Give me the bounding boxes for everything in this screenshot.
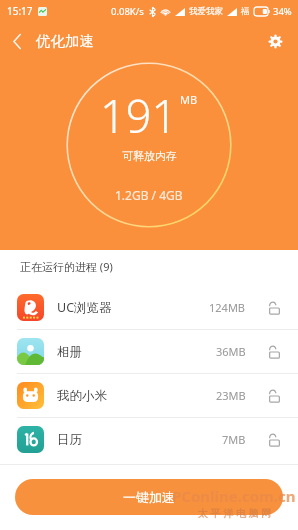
staticText: 太 平 洋 电 脑 网	[198, 506, 271, 520]
staticText: 可释放内存	[122, 149, 177, 163]
staticText: 0.08K/s	[111, 5, 144, 18]
staticText: PConline.com.cn	[172, 486, 296, 506]
staticText: MB	[180, 92, 198, 107]
staticText: 相册	[57, 344, 216, 360]
button[interactable]: UC浏览器	[0, 286, 298, 329]
button[interactable]: Settings	[258, 24, 292, 58]
staticText: 124MB	[209, 300, 246, 315]
button[interactable]: Lock process	[264, 342, 284, 362]
staticText: 7MB	[222, 432, 246, 447]
staticText: 一键加速	[123, 489, 175, 505]
staticText: 191	[100, 85, 178, 146]
staticText: 正在运行的进程 (9)	[20, 259, 113, 274]
staticText: 我爱我家	[189, 6, 223, 17]
button[interactable]: 一键加速	[15, 479, 283, 515]
button[interactable]: 我的小米	[0, 374, 298, 417]
button[interactable]: 日历	[0, 418, 298, 461]
staticText: 福	[241, 6, 250, 17]
staticText: 34%	[273, 5, 292, 18]
staticText: 23MB	[216, 388, 246, 403]
staticText: 优化加速	[36, 32, 94, 50]
staticText: 日历	[57, 432, 222, 448]
staticText: 36MB	[216, 344, 246, 359]
staticText: 15:17	[7, 4, 33, 18]
staticText: 我的小米	[57, 388, 216, 404]
button[interactable]: Back	[0, 24, 34, 58]
button[interactable]: Lock process	[264, 386, 284, 406]
button[interactable]: 相册	[0, 330, 298, 373]
button[interactable]: Lock process	[264, 430, 284, 450]
button[interactable]: Lock process	[264, 298, 284, 318]
staticText: 1.2GB / 4GB	[115, 187, 183, 203]
staticText: UC浏览器	[57, 299, 209, 316]
